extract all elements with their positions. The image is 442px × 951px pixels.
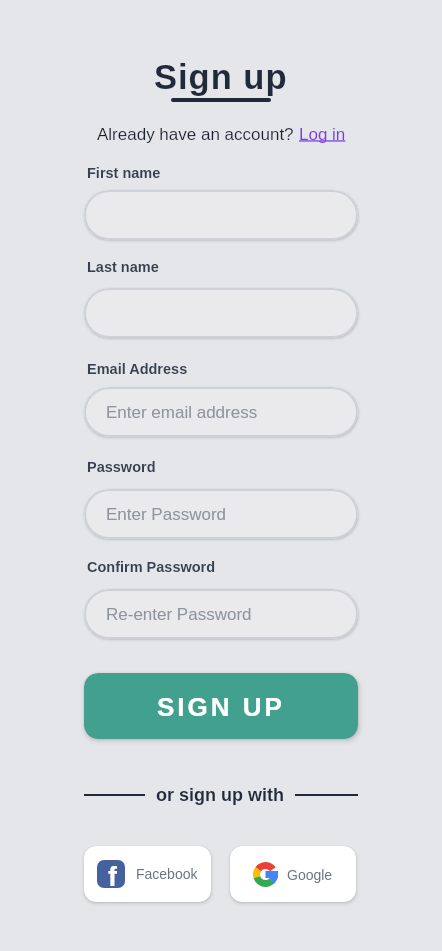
staticText: Confirm Password — [87, 559, 216, 575]
button[interactable]: SIGN UP — [84, 673, 358, 739]
button[interactable] — [84, 288, 358, 338]
button[interactable]: Log in — [299, 125, 346, 144]
staticText: Google — [287, 867, 333, 883]
button[interactable]: Re-enter Password — [84, 589, 358, 639]
staticText: Already have an account? — [97, 125, 299, 144]
staticText: Last name — [87, 259, 159, 275]
button[interactable]: Google — [230, 846, 356, 902]
staticText: Email Address — [87, 361, 188, 377]
staticText: Password — [87, 459, 156, 475]
button[interactable] — [84, 190, 358, 240]
button[interactable]: Enter email address — [84, 387, 358, 437]
staticText: First name — [87, 165, 161, 181]
staticText: Sign up — [154, 58, 288, 97]
staticText: or sign up with — [156, 785, 284, 805]
staticText: Enter email address — [106, 403, 258, 422]
button[interactable]: f — [84, 846, 211, 902]
staticText: Enter Password — [106, 505, 226, 524]
staticText: Facebook — [136, 866, 198, 882]
button[interactable]: Enter Password — [84, 489, 358, 539]
staticText: Re-enter Password — [106, 605, 252, 624]
staticText: SIGN UP — [157, 692, 285, 721]
staticText: f — [108, 862, 117, 888]
